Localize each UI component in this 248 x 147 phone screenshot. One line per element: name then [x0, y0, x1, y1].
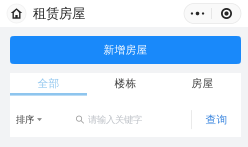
- staticText: 租赁房屋: [33, 5, 85, 22]
- staticText: 排序: [16, 114, 34, 125]
- staticText: 楼栋: [114, 77, 136, 90]
- staticText: 全部: [37, 77, 59, 90]
- button[interactable]: 新增房屋: [10, 36, 241, 64]
- staticText: 房屋: [191, 77, 213, 90]
- staticText: 请输入关键字: [88, 114, 142, 125]
- button[interactable]: Home: [6, 2, 27, 24]
- button[interactable]: 查询: [192, 98, 241, 141]
- button[interactable]: More: [184, 3, 211, 23]
- button[interactable]: 房屋: [164, 74, 241, 93]
- button[interactable]: 排序: [16, 98, 42, 141]
- button[interactable]: 楼栋: [87, 74, 164, 93]
- button[interactable]: 全部: [10, 74, 87, 93]
- button[interactable]: Close mini program: [212, 3, 241, 23]
- staticText: 查询: [205, 113, 227, 126]
- staticText: 新增房屋: [103, 43, 147, 56]
